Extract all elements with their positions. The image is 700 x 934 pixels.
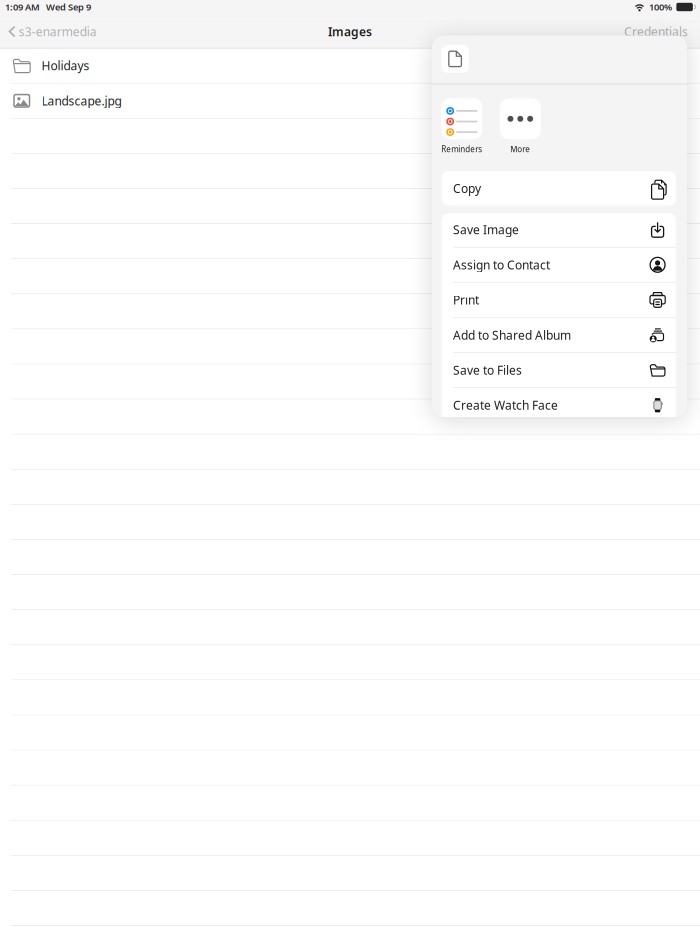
staticText: 100% (649, 1, 672, 13)
button[interactable]: Create Watch Face (442, 388, 676, 422)
button[interactable]: Save to Files (442, 353, 676, 388)
staticText: Landscape.jpg (41, 93, 121, 109)
staticText: Assign to Contact (453, 257, 550, 273)
staticText: Print (453, 292, 479, 308)
staticText: Save Image (453, 222, 519, 238)
staticText: Images (328, 23, 372, 39)
button[interactable]: Save Image (442, 212, 676, 248)
button[interactable]: Add to Shared Album (442, 318, 676, 353)
button[interactable]: Reminders (441, 98, 482, 154)
staticText: 1:09 AM (5, 1, 40, 13)
staticText: Credentials (624, 23, 688, 39)
button[interactable]: Holidays (0, 48, 700, 84)
button[interactable]: Assign to Contact (442, 248, 676, 283)
staticText: Create Watch Face (453, 397, 558, 413)
staticText: Wed Sep 9 (46, 1, 91, 13)
staticText: Reminders (441, 144, 482, 154)
button[interactable]: Copy (442, 171, 676, 206)
staticText: Save to Files (453, 362, 522, 378)
staticText: Add to Shared Album (453, 327, 571, 343)
button[interactable]: Landscape.jpg (0, 84, 700, 119)
button[interactable]: Credentials (618, 18, 700, 44)
button[interactable]: s3-enarmedia (0, 18, 103, 44)
staticText: s3-enarmedia (19, 23, 97, 39)
staticText: Copy (453, 180, 481, 196)
staticText: Holidays (41, 58, 89, 74)
button[interactable]: Print (442, 283, 676, 318)
staticText: More (510, 144, 530, 154)
button[interactable]: More (500, 98, 541, 154)
